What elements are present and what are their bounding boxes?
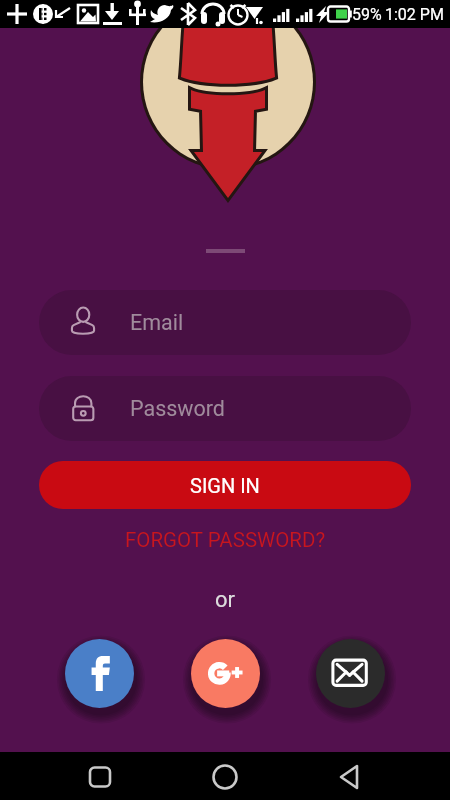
staticText: 59%: [352, 5, 382, 24]
button[interactable]: FORGOT PASSWORD?: [120, 524, 330, 556]
button[interactable]: Recent apps: [0, 752, 150, 800]
staticText: or: [215, 587, 236, 613]
staticText: 1:02 PM: [385, 5, 444, 24]
staticText: Email: [130, 310, 184, 335]
button[interactable]: Password: [39, 376, 411, 441]
staticText: Password: [130, 396, 225, 421]
button[interactable]: Sign in with Google Plus: [191, 639, 260, 708]
staticText: SIGN IN: [190, 474, 260, 497]
button[interactable]: Home: [150, 752, 300, 800]
button[interactable]: Back: [300, 752, 450, 800]
button[interactable]: SIGN IN: [39, 461, 411, 509]
button[interactable]: Sign in with Facebook: [65, 639, 134, 708]
button[interactable]: Email: [39, 290, 411, 355]
button[interactable]: Sign in with Email: [316, 639, 385, 708]
staticText: FORGOT PASSWORD?: [125, 528, 326, 552]
